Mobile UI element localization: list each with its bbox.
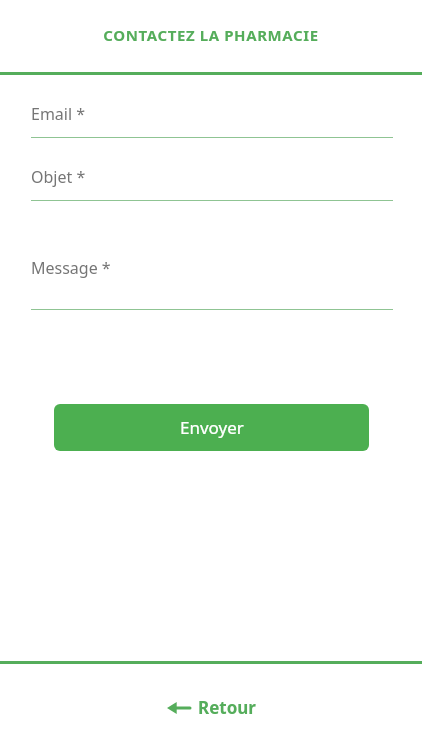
staticText: Email * — [31, 103, 86, 125]
staticText: Retour — [198, 696, 256, 719]
button[interactable]: Email * — [31, 103, 393, 138]
staticText: CONTACTEZ LA PHARMACIE — [103, 25, 319, 45]
staticText: Message * — [31, 257, 111, 279]
staticText: Envoyer — [180, 416, 244, 439]
button[interactable]: Back — [149, 686, 274, 729]
button[interactable]: Objet * — [31, 166, 393, 201]
staticText: Objet * — [31, 166, 86, 188]
other: Back — [167, 699, 190, 717]
button[interactable]: Message * — [31, 257, 393, 310]
button[interactable]: Envoyer — [54, 404, 369, 451]
